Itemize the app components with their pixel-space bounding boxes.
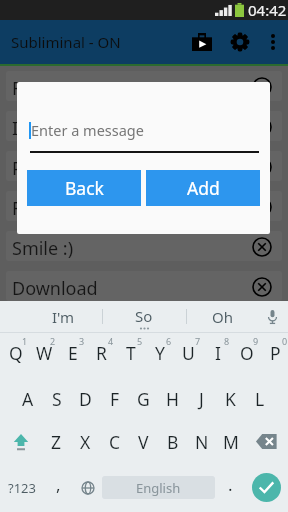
- button[interactable]: Oh: [183, 301, 261, 332]
- staticText: E: [68, 341, 78, 365]
- button[interactable]: Feel good: [6, 191, 282, 221]
- button[interactable]: Delete: [245, 420, 288, 463]
- button[interactable]: B: [158, 420, 187, 463]
- staticText: .: [228, 473, 233, 496]
- staticText: Feel good: [12, 196, 95, 221]
- button[interactable]: J: [187, 377, 216, 420]
- button[interactable]: M: [216, 420, 245, 463]
- button[interactable]: X: [71, 420, 100, 463]
- button[interactable]: H: [158, 377, 187, 420]
- button[interactable]: English: [102, 463, 215, 512]
- staticText: L: [255, 387, 265, 411]
- button[interactable]: I am calm: [6, 111, 282, 141]
- button[interactable]: Download: [6, 271, 282, 301]
- staticText: 8: [224, 335, 230, 347]
- staticText: W: [36, 341, 53, 365]
- button[interactable]: G: [129, 377, 158, 420]
- staticText: Oh: [212, 307, 233, 327]
- staticText: I: [215, 341, 221, 365]
- staticText: 3: [79, 335, 85, 347]
- button[interactable]: Settings: [220, 20, 259, 64]
- button[interactable]: Delete: [252, 157, 272, 177]
- staticText: C: [109, 430, 121, 454]
- staticText: Subliminal - ON: [11, 32, 121, 52]
- button[interactable]: More options: [259, 20, 287, 64]
- staticText: O: [240, 341, 254, 365]
- button[interactable]: Add: [146, 170, 260, 206]
- button[interactable]: P: [259, 333, 288, 377]
- staticText: P: [270, 341, 281, 365]
- button[interactable]: U: [172, 333, 201, 377]
- button[interactable]: R: [85, 333, 114, 377]
- staticText: A: [22, 387, 34, 411]
- staticText: Download: [12, 276, 98, 301]
- staticText: 5: [137, 335, 143, 347]
- staticText: N: [195, 430, 209, 454]
- staticText: English: [136, 479, 181, 497]
- staticText: ,: [56, 473, 61, 496]
- button[interactable]: ,: [43, 463, 73, 512]
- button[interactable]: Y: [143, 333, 172, 377]
- staticText: 4: [108, 335, 114, 347]
- button[interactable]: F: [100, 377, 129, 420]
- button[interactable]: .: [215, 463, 246, 512]
- button[interactable]: I'm: [24, 301, 102, 332]
- button[interactable]: L: [245, 377, 274, 420]
- button[interactable]: Change language: [73, 463, 103, 512]
- button[interactable]: E: [56, 333, 85, 377]
- staticText: Smile :): [12, 236, 74, 261]
- button[interactable]: Positive: [6, 151, 282, 181]
- button[interactable]: C: [100, 420, 129, 463]
- staticText: V: [138, 430, 149, 454]
- staticText: F: [110, 387, 120, 411]
- staticText: Add: [187, 176, 220, 200]
- button[interactable]: ?123: [0, 463, 43, 512]
- staticText: J: [199, 387, 204, 411]
- button[interactable]: K: [216, 377, 245, 420]
- staticText: So: [135, 306, 153, 326]
- button[interactable]: Back: [27, 170, 141, 206]
- button[interactable]: Delete: [252, 77, 272, 97]
- button[interactable]: O: [230, 333, 259, 377]
- staticText: Y: [155, 341, 165, 365]
- button[interactable]: Focus: [6, 71, 282, 101]
- button[interactable]: Z: [42, 420, 71, 463]
- button[interactable]: I: [201, 333, 230, 377]
- staticText: S: [52, 387, 62, 411]
- staticText: R: [96, 341, 107, 365]
- button[interactable]: Delete: [252, 197, 272, 217]
- button[interactable]: Shift: [0, 420, 42, 463]
- staticText: Q: [9, 341, 23, 365]
- button[interactable]: Delete: [252, 237, 272, 257]
- button[interactable]: V: [129, 420, 158, 463]
- button[interactable]: Store: [182, 20, 221, 64]
- staticText: 2: [50, 335, 56, 347]
- staticText: 7: [195, 335, 201, 347]
- button[interactable]: So: [105, 301, 183, 332]
- staticText: Focus: [12, 76, 61, 101]
- staticText: Z: [51, 430, 62, 454]
- button[interactable]: Smile :): [6, 231, 282, 261]
- button[interactable]: W: [28, 333, 56, 377]
- staticText: ?123: [8, 479, 36, 497]
- button[interactable]: Delete: [252, 117, 272, 137]
- staticText: Positive: [12, 156, 78, 181]
- staticText: 0: [282, 335, 288, 347]
- button[interactable]: N: [187, 420, 216, 463]
- staticText: I am calm: [12, 116, 95, 141]
- staticText: 1: [22, 335, 28, 347]
- button[interactable]: S: [42, 377, 71, 420]
- button[interactable]: A: [13, 377, 42, 420]
- button[interactable]: Voice input: [256, 301, 288, 332]
- button[interactable]: Q: [0, 333, 28, 377]
- button[interactable]: T: [114, 333, 143, 377]
- staticText: 04:42: [248, 0, 287, 20]
- button[interactable]: D: [71, 377, 100, 420]
- button[interactable]: Delete: [252, 277, 272, 297]
- staticText: M: [223, 430, 239, 454]
- staticText: I'm: [52, 307, 75, 327]
- button[interactable]: Enter: [246, 463, 288, 512]
- staticText: X: [80, 430, 91, 454]
- staticText: 6: [166, 335, 172, 347]
- staticText: H: [166, 387, 179, 411]
